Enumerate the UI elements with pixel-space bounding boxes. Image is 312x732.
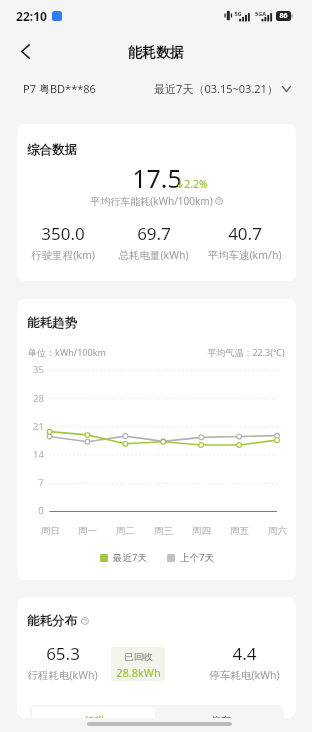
staticText: 4.4 — [232, 642, 257, 665]
staticText: 已回收 — [124, 651, 153, 663]
staticText: 行程耗电(kWh) — [27, 668, 98, 682]
staticText: 40.7 — [228, 222, 262, 245]
staticText: 28.8kWh — [116, 665, 161, 680]
staticText: 69.7 — [137, 222, 171, 245]
staticText: 停车 — [211, 714, 231, 718]
staticText: 5G — [234, 10, 242, 17]
staticText: 86 — [279, 11, 288, 21]
button[interactable]: 最近7天（03.15~03.21） — [154, 81, 291, 96]
staticText: 能耗分布 — [27, 613, 77, 629]
staticText: 21 — [33, 420, 44, 433]
staticText: 综合数据 — [27, 142, 77, 158]
staticText: 0 — [38, 504, 44, 517]
staticText: 上个7天 — [180, 551, 214, 564]
button[interactable]: 停车 — [157, 705, 284, 718]
staticText: 最近7天（03.15~03.21） — [154, 81, 278, 96]
staticText: 能耗数据 — [128, 44, 184, 62]
staticText: 65.3 — [46, 642, 80, 665]
staticText: 周三 — [154, 525, 173, 537]
staticText: 平均行车能耗(kWh/100km) — [90, 194, 213, 208]
staticText: 行程 — [84, 714, 104, 718]
staticText: 平均车速(km/h) — [207, 248, 282, 262]
staticText: P7 粤BD***86 — [23, 81, 96, 96]
staticText: 35 — [33, 363, 44, 376]
staticText: 周四 — [192, 525, 211, 537]
staticText: 单位：kWh/100km — [28, 346, 106, 358]
staticText: 周一 — [78, 525, 97, 537]
staticText: 最近7天 — [113, 551, 147, 564]
staticText: 5GA — [255, 10, 266, 17]
staticText: 350.0 — [41, 222, 85, 245]
button[interactable]: 能耗分布 — [27, 613, 89, 629]
staticText: 周六 — [268, 525, 287, 537]
staticText: 行驶里程(km) — [31, 248, 95, 262]
staticText: 22:10 — [16, 8, 47, 24]
staticText: 周五 — [230, 525, 249, 537]
button[interactable]: 行程 — [32, 707, 155, 718]
staticText: 能耗趋势 — [27, 315, 77, 331]
staticText: 14 — [33, 448, 44, 461]
staticText: 28 — [33, 392, 44, 405]
staticText: 7 — [38, 476, 44, 489]
button[interactable]: Back — [8, 34, 43, 69]
staticText: 总耗电量(kWh) — [118, 248, 189, 262]
button[interactable]: P7 粤BD***86 — [23, 81, 96, 96]
staticText: 17.5 — [132, 161, 182, 195]
staticText: 周日 — [41, 525, 60, 537]
staticText: 周二 — [116, 525, 135, 537]
staticText: 2.2% — [184, 177, 208, 191]
staticText: 平均气温：22.3(℃) — [207, 346, 285, 358]
staticText: 停车耗电(kWh) — [209, 668, 280, 682]
